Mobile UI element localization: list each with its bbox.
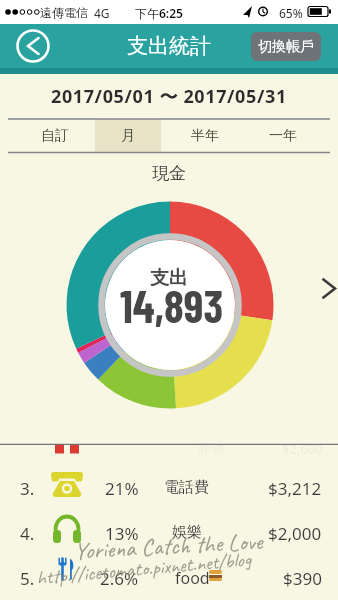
staticText: food — [175, 567, 210, 589]
staticText: $390 — [283, 567, 322, 590]
staticText: 遠傳電信 — [40, 5, 88, 20]
staticText: 2017/05/01 〜 2017/05/31 — [51, 84, 287, 109]
staticText: 21% — [105, 477, 139, 500]
staticText: 現金 — [152, 163, 186, 184]
staticText: 月 — [121, 127, 135, 145]
staticText: http://icetomato.pixnet.net/blog — [35, 547, 253, 590]
staticText: 寵物 — [198, 440, 224, 456]
staticText: 自訂 — [41, 127, 69, 145]
staticText: $2,600 — [282, 440, 323, 458]
staticText: 65% — [279, 5, 303, 21]
staticText: 2.6% — [100, 567, 139, 590]
staticText: 支出統計 — [127, 33, 211, 59]
staticText: 電話費 — [164, 478, 209, 497]
staticText: 4G — [94, 5, 110, 21]
staticText: 切換帳戶 — [258, 38, 314, 56]
staticText: Yoriena Catch the Love — [73, 526, 264, 566]
staticText: 3. — [20, 477, 35, 500]
staticText: $3,212 — [268, 477, 322, 500]
staticText: 14,893 — [120, 278, 224, 332]
staticText: 半年 — [191, 127, 219, 145]
staticText: 娛樂 — [172, 523, 202, 542]
staticText: 4. — [20, 522, 35, 545]
staticText: $2,000 — [268, 522, 322, 545]
staticText: 5. — [20, 567, 35, 590]
staticText: 支出 — [150, 266, 188, 290]
staticText: 13% — [105, 522, 139, 545]
staticText: 下午6:25 — [135, 5, 183, 21]
staticText: 一年 — [269, 127, 297, 145]
